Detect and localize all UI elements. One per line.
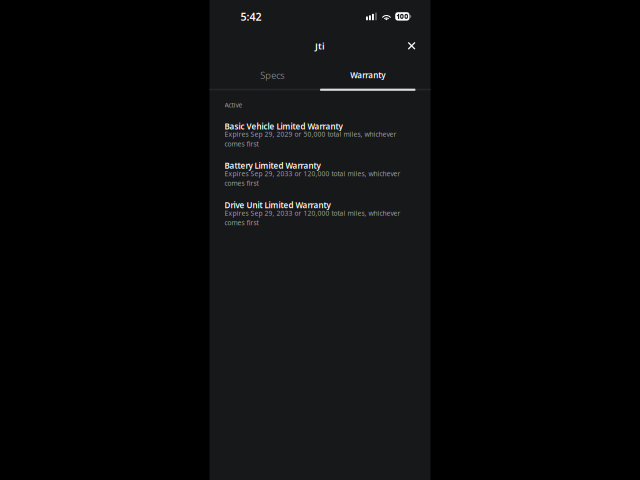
staticText: Battery Limited Warranty <box>224 160 320 171</box>
staticText: Jti <box>315 40 325 52</box>
staticText: Expires Sep 29, 2033 or 120,000 total mi… <box>224 209 400 227</box>
staticText: 5:42 <box>240 9 261 24</box>
button[interactable]: Specs <box>224 60 320 90</box>
button[interactable]: Warranty <box>320 60 415 90</box>
button[interactable]: Close <box>401 36 423 58</box>
staticText: Specs <box>260 69 284 81</box>
staticText: Drive Unit Limited Warranty <box>224 200 330 210</box>
staticText: Active <box>224 101 242 109</box>
staticText: Expires Sep 29, 2033 or 120,000 total mi… <box>224 169 400 188</box>
staticText: Warranty <box>350 70 385 80</box>
staticText: Expires Sep 29, 2029 or 50,000 total mil… <box>224 130 396 148</box>
staticText: Basic Vehicle Limited Warranty <box>224 121 342 132</box>
